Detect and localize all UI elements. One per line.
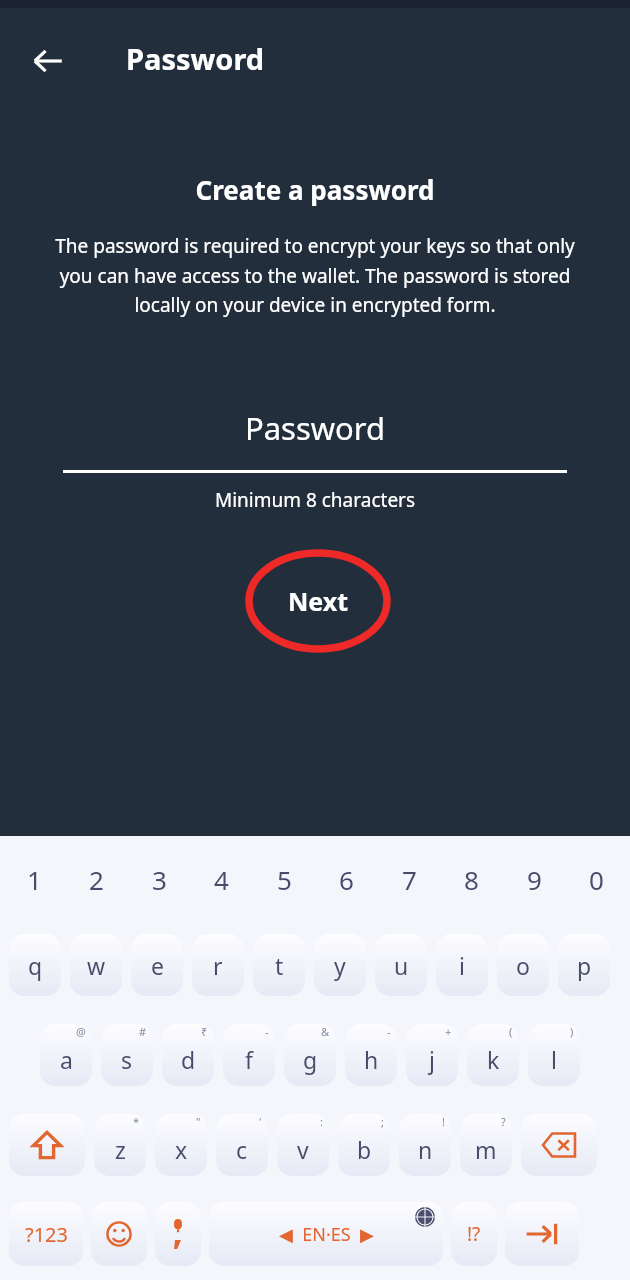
button[interactable]: ? xyxy=(460,1114,512,1176)
staticText: 7 xyxy=(402,862,417,897)
staticText: ) xyxy=(570,1024,574,1039)
button[interactable]: p xyxy=(558,934,610,996)
staticText: Next xyxy=(288,584,349,618)
button[interactable]: @ xyxy=(40,1024,92,1086)
button[interactable]: i xyxy=(436,934,488,996)
staticText: Password xyxy=(126,39,265,78)
button[interactable]: u xyxy=(375,934,427,996)
staticText: b xyxy=(357,1134,372,1165)
button[interactable]: ( xyxy=(467,1024,519,1086)
staticText: w xyxy=(87,950,106,981)
staticText: : xyxy=(320,1114,323,1129)
staticText: h xyxy=(364,1044,379,1075)
button[interactable]: 3 xyxy=(130,856,188,902)
button[interactable]: 2 xyxy=(67,856,125,902)
staticText: * xyxy=(133,1114,140,1129)
staticText: # xyxy=(139,1024,147,1039)
staticText: c xyxy=(236,1134,248,1165)
button[interactable]: Next xyxy=(249,553,387,649)
staticText: & xyxy=(321,1024,330,1039)
staticText: s xyxy=(121,1044,133,1075)
staticText: 8 xyxy=(464,862,479,897)
button[interactable]: : xyxy=(277,1114,329,1176)
button[interactable]: w xyxy=(70,934,122,996)
staticText: ?123 xyxy=(25,1221,68,1248)
button[interactable]: Symbols xyxy=(9,1202,83,1266)
staticText: ( xyxy=(509,1024,513,1039)
staticText: @ xyxy=(76,1024,86,1039)
button[interactable]: 8 xyxy=(442,856,500,902)
staticText: r xyxy=(213,950,223,981)
staticText: 5 xyxy=(277,862,292,897)
button[interactable]: y xyxy=(314,934,366,996)
button[interactable]: Emoji xyxy=(91,1202,147,1266)
staticText: - xyxy=(265,1024,269,1039)
button[interactable]: 6 xyxy=(317,856,375,902)
staticText: ' xyxy=(259,1114,262,1129)
staticText: The password is required to encrypt your… xyxy=(55,233,575,317)
staticText: t xyxy=(275,950,284,981)
button[interactable]: Enter xyxy=(505,1202,579,1266)
staticText: 1 xyxy=(27,862,42,897)
button[interactable]: 4 xyxy=(192,856,250,902)
staticText: o xyxy=(516,950,530,981)
button[interactable]: Punctuation xyxy=(451,1202,497,1266)
button[interactable]: Space xyxy=(209,1202,443,1266)
staticText: d xyxy=(181,1044,196,1075)
staticText: 9 xyxy=(527,862,542,897)
button[interactable]: ! xyxy=(399,1114,451,1176)
button[interactable]: - xyxy=(223,1024,275,1086)
button[interactable]: " xyxy=(155,1114,207,1176)
staticText: Create a password xyxy=(0,172,630,207)
button[interactable]: 9 xyxy=(505,856,563,902)
staticText: 3 xyxy=(152,862,167,897)
button[interactable]: ) xyxy=(528,1024,580,1086)
button[interactable]: - xyxy=(345,1024,397,1086)
staticText: + xyxy=(445,1024,452,1039)
button[interactable]: r xyxy=(192,934,244,996)
button[interactable]: Back xyxy=(20,33,76,89)
button[interactable]: ' xyxy=(216,1114,268,1176)
staticText: y xyxy=(334,950,346,981)
button[interactable]: Shift xyxy=(9,1114,85,1176)
staticText: a xyxy=(60,1044,73,1075)
staticText: l xyxy=(551,1044,557,1075)
button[interactable]: t xyxy=(253,934,305,996)
staticText: p xyxy=(577,950,592,981)
button[interactable]: e xyxy=(131,934,183,996)
button[interactable]: Password xyxy=(63,407,567,473)
staticText: n xyxy=(418,1134,433,1165)
staticText: !? xyxy=(467,1221,481,1247)
button[interactable]: 5 xyxy=(255,856,313,902)
staticText: Password xyxy=(63,407,567,449)
button[interactable]: 7 xyxy=(380,856,438,902)
staticText: 6 xyxy=(339,862,354,897)
staticText: f xyxy=(245,1044,253,1075)
staticText: v xyxy=(297,1134,309,1165)
staticText: ! xyxy=(442,1114,445,1129)
button[interactable]: ; xyxy=(338,1114,390,1176)
staticText: x xyxy=(175,1134,188,1165)
staticText: ? xyxy=(501,1114,506,1129)
staticText: ◀ EN·ES ▶ xyxy=(279,1222,374,1247)
button[interactable]: + xyxy=(406,1024,458,1086)
staticText: ₹ xyxy=(201,1024,208,1039)
staticText: g xyxy=(303,1044,318,1075)
button[interactable]: # xyxy=(101,1024,153,1086)
staticText: 4 xyxy=(214,862,229,897)
staticText: " xyxy=(196,1114,201,1129)
button[interactable]: * xyxy=(94,1114,146,1176)
button[interactable]: Voice input and comma xyxy=(155,1202,201,1266)
button[interactable]: q xyxy=(9,934,61,996)
button[interactable]: 0 xyxy=(567,856,625,902)
staticText: m xyxy=(475,1134,497,1165)
staticText: Minimum 8 characters xyxy=(0,487,630,513)
staticText: e xyxy=(151,950,164,981)
button[interactable]: & xyxy=(284,1024,336,1086)
staticText: u xyxy=(394,950,409,981)
button[interactable]: ₹ xyxy=(162,1024,214,1086)
button[interactable]: Backspace xyxy=(521,1114,597,1176)
staticText: z xyxy=(115,1134,126,1165)
button[interactable]: o xyxy=(497,934,549,996)
button[interactable]: 1 xyxy=(5,856,63,902)
